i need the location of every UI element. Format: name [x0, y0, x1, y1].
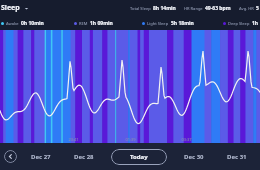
- staticText: 1h 09min: [90, 20, 113, 27]
- button[interactable]: Dec 30: [180, 149, 208, 165]
- staticText: REM: [79, 21, 88, 26]
- staticText: Sleep: [1, 3, 20, 13]
- staticText: Avg. HR: [239, 6, 254, 11]
- button[interactable]: Dec 31: [223, 149, 251, 165]
- staticText: 8h 14min: [153, 5, 176, 12]
- staticText: Dec 31: [227, 153, 247, 161]
- button[interactable]: Dec 27: [27, 149, 55, 165]
- staticText: Awake: [6, 21, 19, 26]
- staticText: Total Sleep: [130, 6, 151, 11]
- staticText: HR Range: [184, 6, 203, 11]
- staticText: Today: [130, 153, 148, 161]
- button[interactable]: Previous: [4, 150, 17, 163]
- staticText: Light Sleep: [147, 21, 169, 26]
- staticText: Deep Sleep: [228, 21, 250, 26]
- staticText: 5h 18min: [171, 20, 194, 27]
- button[interactable]: Today: [111, 149, 167, 165]
- staticText: Dec 27: [31, 153, 51, 161]
- staticText: 49-63 bpm: [205, 5, 231, 12]
- button[interactable]: Sleep: [1, 3, 29, 13]
- staticText: Dec 28: [74, 153, 94, 161]
- staticText: 23:41: [68, 137, 79, 142]
- staticText: Dec 30: [184, 153, 204, 161]
- staticText: 01:39: [125, 137, 136, 142]
- staticText: 1h: [252, 20, 259, 27]
- button[interactable]: Dec 28: [70, 149, 98, 165]
- staticText: 5: [256, 5, 259, 12]
- staticText: 0h 10min: [21, 20, 44, 27]
- staticText: 03:37: [181, 137, 192, 142]
